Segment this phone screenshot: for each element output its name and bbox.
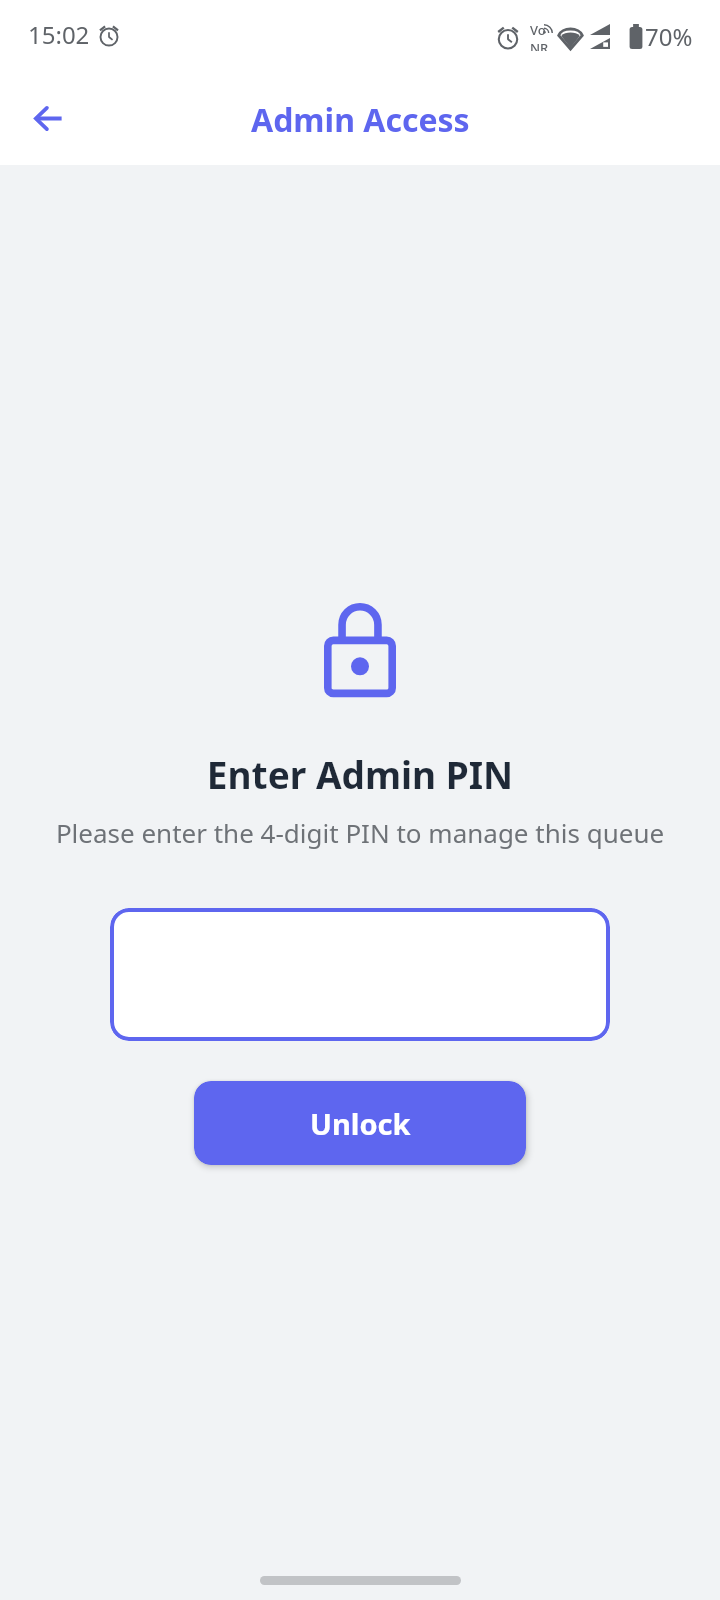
staticText: 15:02	[28, 18, 90, 51]
staticText: Please enter the 4-digit PIN to manage t…	[0, 815, 720, 850]
staticText: Unlock	[310, 1104, 411, 1143]
button[interactable]: Back	[14, 84, 82, 152]
button[interactable]	[110, 908, 610, 1041]
staticText: Vo	[530, 21, 546, 39]
staticText: Admin Access	[251, 98, 470, 142]
staticText: NR	[530, 39, 549, 51]
button[interactable]: Unlock	[194, 1081, 526, 1165]
staticText: Enter Admin PIN	[0, 749, 720, 799]
staticText: 70%	[645, 20, 693, 53]
